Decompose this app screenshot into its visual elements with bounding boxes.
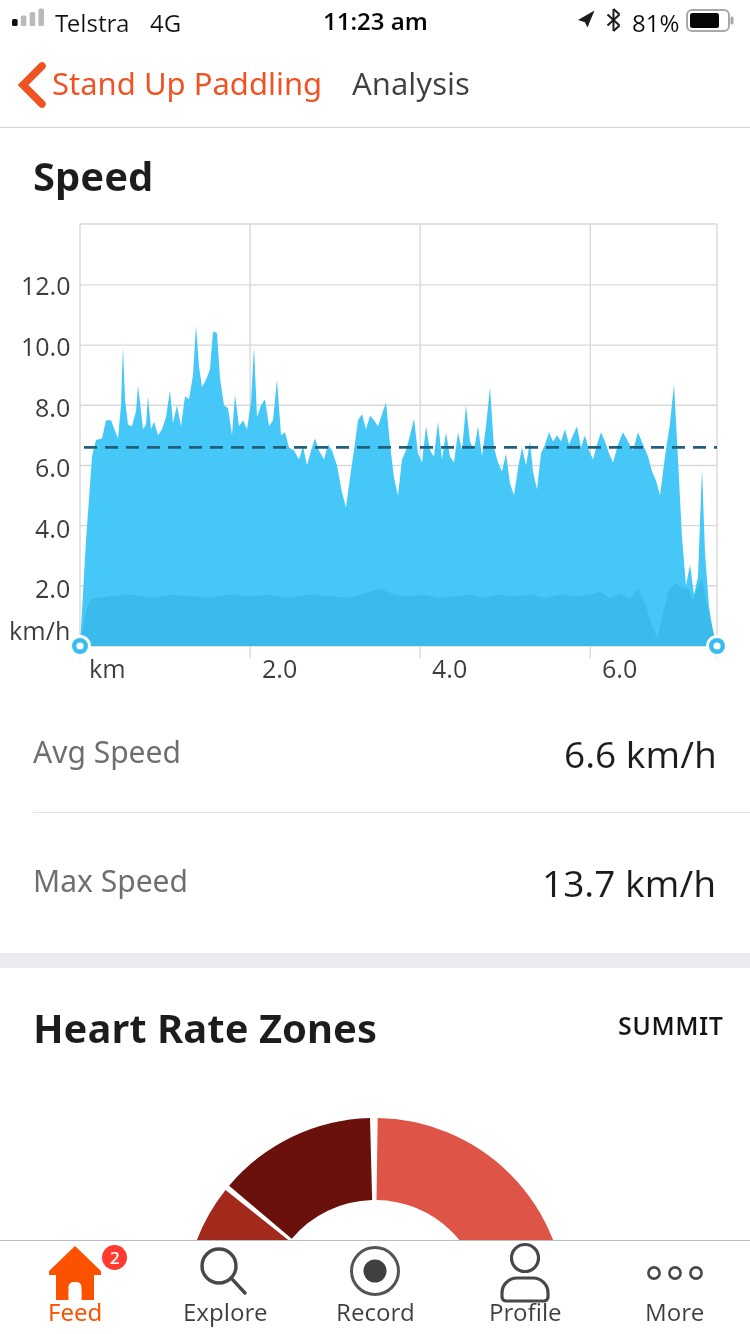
staticText: 13.7 km/h	[542, 857, 717, 903]
staticText: 81%	[632, 6, 680, 39]
staticText: 6.0	[602, 651, 638, 683]
button[interactable]: Record	[300, 1240, 450, 1334]
staticText: Speed	[33, 148, 154, 202]
staticText: 2.0	[262, 651, 298, 683]
button[interactable]: Max Speed	[0, 857, 750, 903]
staticText: 4.0	[432, 651, 468, 683]
button[interactable]: Stand Up Paddling	[52, 62, 323, 104]
staticText: 2	[110, 1246, 120, 1269]
staticText: Analysis	[352, 62, 470, 104]
staticText: 2.0	[35, 571, 71, 603]
staticText: km	[89, 651, 126, 683]
button[interactable]: Explore	[150, 1240, 300, 1334]
staticText: 6.6 km/h	[564, 728, 717, 774]
staticText: Max Speed	[33, 860, 188, 901]
button[interactable]: More	[600, 1240, 750, 1334]
staticText: Explore	[183, 1295, 268, 1328]
button[interactable]	[20, 64, 46, 106]
staticText: Profile	[489, 1295, 562, 1328]
staticText: 11:23 am	[323, 4, 428, 37]
staticText: Avg Speed	[33, 731, 181, 772]
staticText: 4.0	[35, 511, 71, 543]
staticText: More	[645, 1295, 705, 1328]
staticText: SUMMIT	[618, 1008, 724, 1042]
staticText: Feed	[48, 1295, 103, 1328]
staticText: Telstra	[55, 6, 130, 39]
staticText: Record	[336, 1295, 415, 1328]
staticText: Heart Rate Zones	[33, 1000, 378, 1054]
button[interactable]: Avg Speed	[0, 728, 750, 774]
staticText: 12.0	[21, 268, 71, 300]
staticText: 4G	[150, 6, 182, 39]
staticText: 10.0	[21, 329, 71, 361]
button[interactable]: Profile	[450, 1240, 600, 1334]
staticText: 6.0	[35, 450, 71, 482]
staticText: 8.0	[35, 390, 71, 422]
staticText: km/h	[9, 613, 71, 645]
button[interactable]: 2	[0, 1240, 150, 1334]
